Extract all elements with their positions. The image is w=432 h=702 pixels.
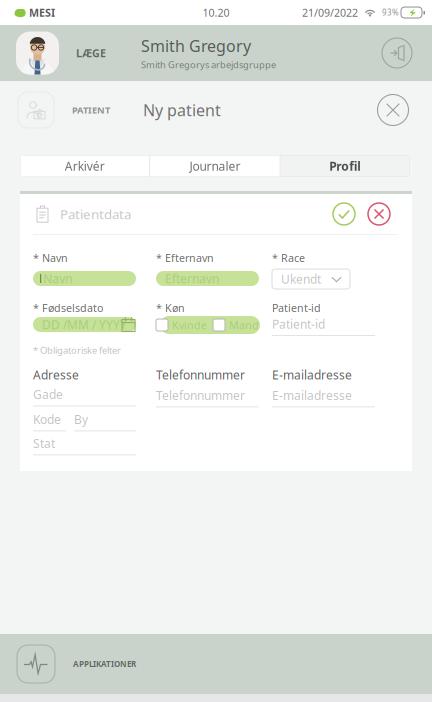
staticText: * Efternavn bbox=[156, 251, 214, 265]
staticText: Smith Gregory bbox=[141, 35, 251, 56]
staticText: Gade bbox=[33, 386, 63, 402]
staticText: 21/09/2022 bbox=[302, 5, 358, 20]
button[interactable]: Save bbox=[333, 203, 355, 225]
staticText: Journaler bbox=[189, 158, 240, 174]
button[interactable]: Arkivér bbox=[20, 155, 149, 177]
staticText: DD /MM / YYYY bbox=[42, 316, 127, 332]
staticText: MESI bbox=[29, 5, 55, 20]
staticText: Kvinde bbox=[172, 318, 207, 332]
staticText: * Obligatoriske felter bbox=[33, 344, 121, 356]
button[interactable]: Ukendt bbox=[272, 269, 350, 289]
staticText: PATIENT bbox=[72, 104, 110, 116]
staticText: Ukendt bbox=[281, 271, 321, 287]
staticText: * Køn bbox=[156, 301, 185, 315]
staticText: Telefonnummer bbox=[156, 387, 245, 403]
staticText: Efternavn bbox=[165, 270, 219, 286]
staticText: Mand bbox=[229, 318, 259, 332]
staticText: Arkivér bbox=[65, 158, 105, 174]
staticText: Navn bbox=[43, 270, 72, 286]
staticText: LÆGE bbox=[76, 46, 106, 60]
staticText: E-mailadresse bbox=[272, 367, 352, 383]
staticText: Patient-id bbox=[272, 301, 321, 315]
staticText: Profil bbox=[329, 158, 361, 174]
staticText: 93% bbox=[382, 7, 399, 18]
staticText: Patientdata bbox=[60, 205, 131, 223]
staticText: * Navn bbox=[33, 251, 68, 265]
button[interactable]: Profil bbox=[281, 155, 410, 177]
staticText: Telefonnummer bbox=[156, 367, 245, 383]
button[interactable]: Close bbox=[376, 93, 410, 127]
button[interactable]: Cancel bbox=[368, 203, 390, 225]
staticText: Ny patient bbox=[143, 99, 221, 121]
button[interactable]: Log out bbox=[380, 36, 414, 70]
staticText: * Race bbox=[272, 251, 305, 265]
staticText: Stat bbox=[33, 435, 55, 451]
staticText: 10.20 bbox=[202, 5, 229, 20]
button[interactable]: Journaler bbox=[150, 155, 280, 177]
staticText: Kode bbox=[33, 411, 61, 427]
staticText: * Fødselsdato bbox=[33, 301, 103, 315]
staticText: APPLIKATIONER bbox=[73, 659, 136, 669]
staticText: Smith Gregorys arbejdsgruppe bbox=[141, 58, 276, 71]
button[interactable]: Applications bbox=[17, 645, 55, 683]
staticText: E-mailadresse bbox=[272, 387, 352, 403]
staticText: Adresse bbox=[33, 367, 79, 383]
staticText: Patient-id bbox=[272, 316, 325, 332]
staticText: By bbox=[74, 411, 88, 427]
